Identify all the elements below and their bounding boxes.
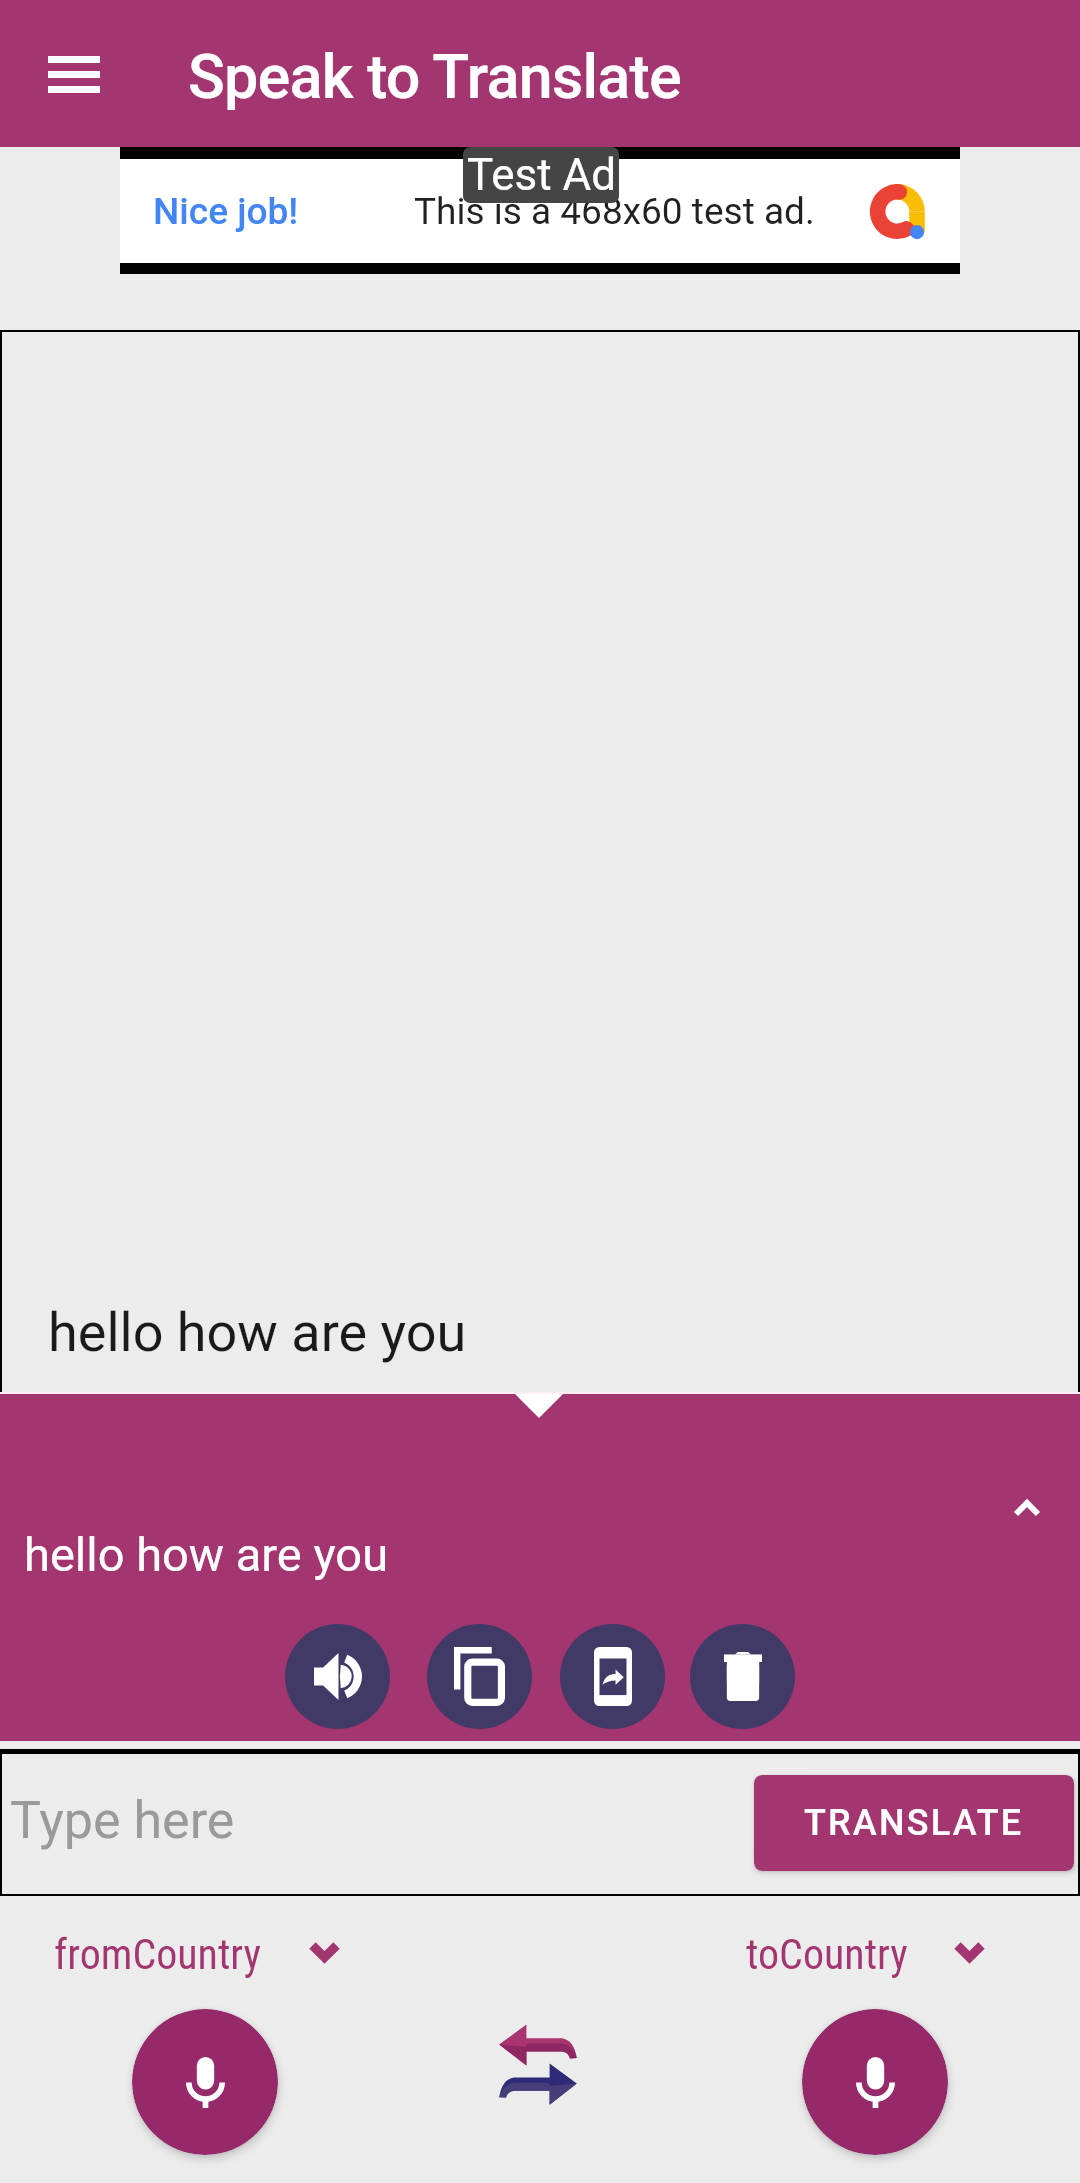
staticText: Speak to Translate <box>188 41 681 112</box>
staticText: Type here <box>10 1790 235 1851</box>
button[interactable]: Start voice input <box>802 2009 948 2155</box>
staticText: This is a 468x60 test ad. <box>414 190 815 233</box>
staticText: TRANSLATE <box>804 1802 1024 1844</box>
staticText: hello how are you <box>48 1301 467 1364</box>
button[interactable]: toCountry <box>712 1912 1007 1990</box>
button[interactable]: Share <box>560 1624 665 1729</box>
button[interactable]: Collapse <box>991 1472 1063 1544</box>
button[interactable]: Start voice input <box>132 2009 278 2155</box>
button[interactable]: Copy <box>427 1624 532 1729</box>
staticText: fromCountry <box>54 1930 262 1979</box>
staticText: toCountry <box>746 1930 908 1979</box>
button[interactable]: fromCountry <box>20 1912 360 1990</box>
button[interactable]: Delete <box>690 1624 795 1729</box>
staticText: hello how are you <box>24 1527 389 1582</box>
staticText: Test Ad <box>467 149 616 201</box>
button[interactable]: TRANSLATE <box>754 1775 1074 1871</box>
button[interactable]: Swap languages <box>498 2024 578 2104</box>
button[interactable]: Open navigation menu <box>26 26 122 122</box>
button[interactable]: Speak aloud <box>285 1624 390 1729</box>
staticText: Nice job! <box>153 190 299 233</box>
